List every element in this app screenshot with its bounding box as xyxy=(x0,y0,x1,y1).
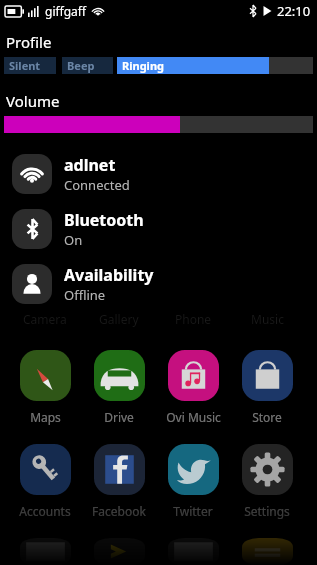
staticText: giffgaff xyxy=(45,3,87,19)
other: Bluetooth xyxy=(12,209,52,249)
button[interactable]: Wi-Fi xyxy=(0,146,317,201)
button[interactable]: Settings xyxy=(230,444,304,519)
staticText: Camera xyxy=(23,311,67,327)
button[interactable]: App xyxy=(156,538,230,565)
button[interactable] xyxy=(0,116,317,133)
staticText: Gallery xyxy=(99,311,139,327)
button[interactable]: App xyxy=(82,538,156,565)
button[interactable]: Availability xyxy=(0,256,317,311)
other: Availability xyxy=(12,264,52,304)
staticText: Maps xyxy=(30,409,61,425)
staticText: Volume xyxy=(6,91,60,111)
staticText: Store xyxy=(252,409,282,425)
button[interactable]: App xyxy=(230,538,304,565)
button[interactable]: Bluetooth xyxy=(0,201,317,256)
staticText: Ringing xyxy=(122,58,164,73)
staticText: Connected xyxy=(64,176,130,194)
button[interactable]: Beep xyxy=(62,57,113,74)
staticText: Ovi Music xyxy=(166,409,221,425)
staticText: Bluetooth xyxy=(64,209,144,231)
staticText: Availability xyxy=(64,264,154,286)
staticText: Offline xyxy=(64,286,106,304)
staticText: Beep xyxy=(67,58,95,73)
other: Wi-Fi xyxy=(12,154,52,194)
button[interactable]: Ovi Music xyxy=(156,350,230,425)
staticText: adlnet xyxy=(64,154,116,176)
button[interactable]: Ringing xyxy=(117,57,269,74)
staticText: Drive xyxy=(104,409,134,425)
button[interactable]: Silent xyxy=(4,57,56,74)
staticText: Facebook xyxy=(92,503,146,519)
button[interactable]: Facebook xyxy=(82,444,156,519)
staticText: Settings xyxy=(244,503,290,519)
staticText: Accounts xyxy=(19,503,71,519)
staticText: On xyxy=(64,231,83,249)
button[interactable]: Twitter xyxy=(156,444,230,519)
button[interactable]: Store xyxy=(230,350,304,425)
button[interactable]: App xyxy=(8,538,82,565)
button[interactable]: Drive xyxy=(82,350,156,425)
staticText: 22:10 xyxy=(277,2,311,20)
button[interactable]: Accounts xyxy=(8,444,82,519)
button[interactable]: Maps xyxy=(8,350,82,425)
staticText: Phone xyxy=(175,311,212,327)
staticText: Twitter xyxy=(173,503,213,519)
staticText: Music xyxy=(251,311,284,327)
staticText: Profile xyxy=(6,32,52,52)
staticText: Silent xyxy=(9,58,41,73)
